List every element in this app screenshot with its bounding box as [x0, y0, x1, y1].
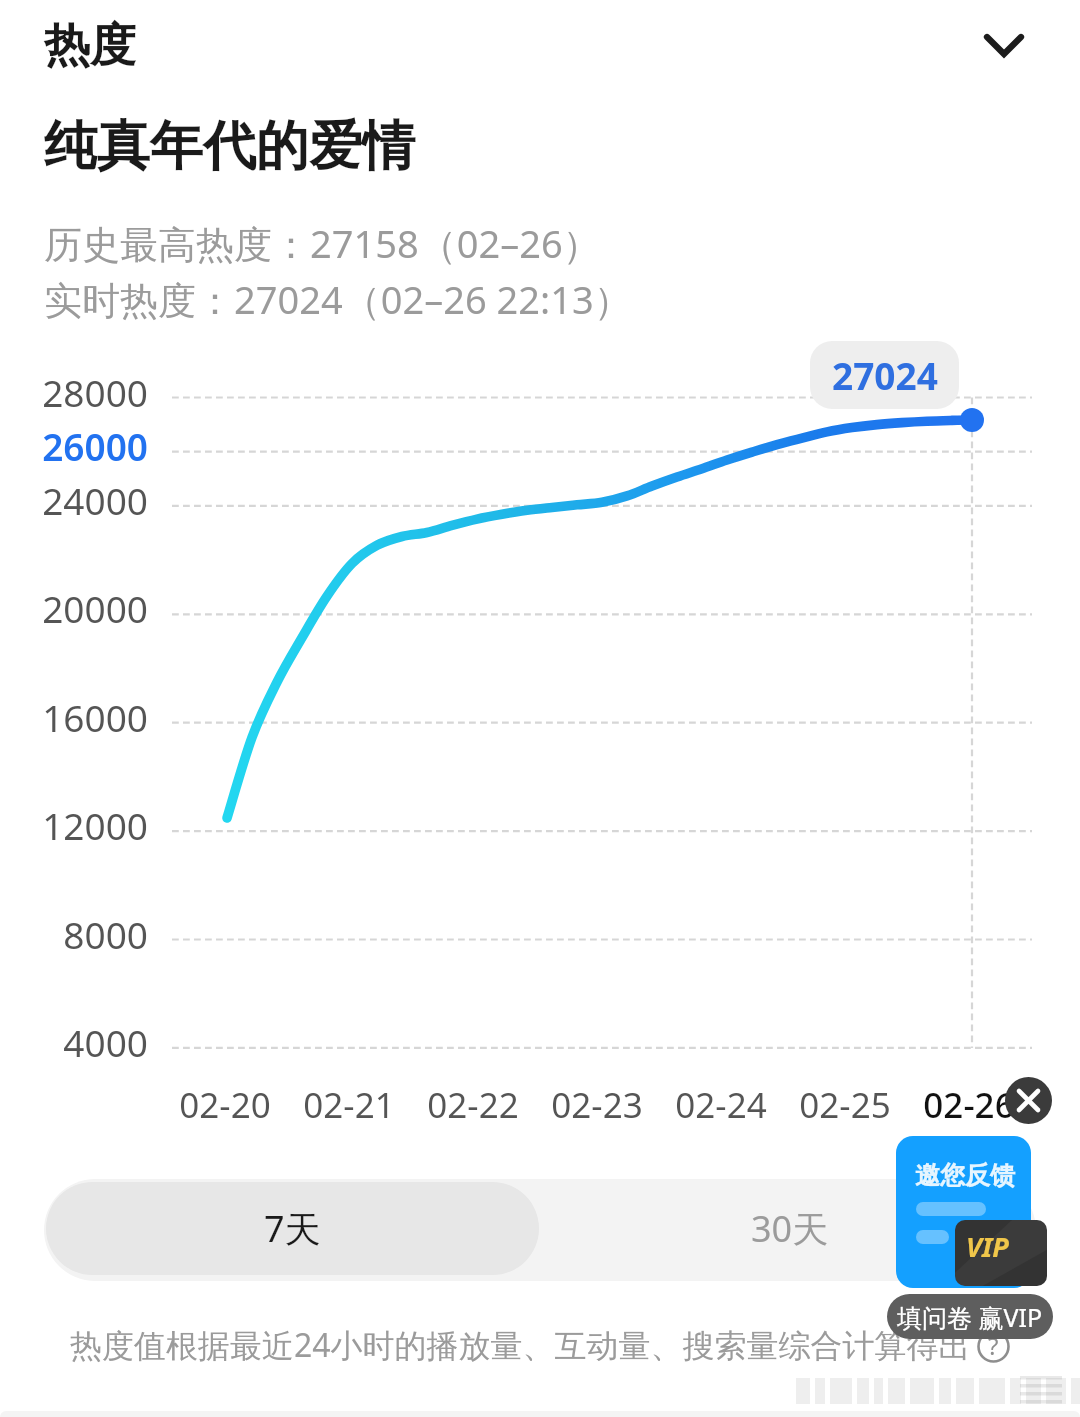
staticText: 热度 [44, 17, 136, 75]
staticText: 7天 [264, 1204, 321, 1253]
staticText: 20000 [28, 583, 148, 633]
button[interactable]: Info [976, 1329, 1011, 1364]
staticText: 邀您反馈 [915, 1160, 1015, 1191]
staticText: 12000 [28, 800, 148, 850]
staticText: 填问卷 赢VIP [897, 1300, 1043, 1334]
button[interactable]: 30天 [543, 1182, 1036, 1275]
staticText: 02-24 [661, 1081, 781, 1129]
button[interactable]: Close [1005, 1077, 1052, 1124]
staticText: ? [988, 1329, 999, 1362]
button[interactable]: Collapse [960, 0, 1046, 86]
staticText: 26000 [28, 421, 148, 471]
staticText: 02-21 [289, 1081, 409, 1129]
button[interactable]: 填问卷 赢VIP [887, 1294, 1053, 1339]
staticText: 02-25 [785, 1081, 905, 1129]
staticText: 8000 [28, 909, 148, 959]
button[interactable]: Feedback promo [896, 1136, 1031, 1288]
staticText: 02-23 [537, 1081, 657, 1129]
staticText: 30天 [751, 1204, 829, 1253]
staticText: 16000 [28, 692, 148, 742]
staticText: 历史最高热度：27158（02–26） [44, 217, 601, 269]
staticText: 02-22 [413, 1081, 533, 1129]
staticText: 24000 [28, 475, 148, 525]
staticText: 27024 [832, 350, 938, 400]
staticText: 实时热度：27024（02–26 22:13） [44, 273, 632, 325]
button[interactable]: 7天 [46, 1182, 539, 1275]
staticText: 纯真年代的爱情 [44, 113, 415, 180]
staticText: VIP [966, 1228, 1009, 1265]
staticText: 02-20 [165, 1081, 285, 1129]
staticText: 热度值根据最近24小时的播放量、互动量、搜索量综合计算得出 [70, 1323, 971, 1367]
staticText: 4000 [28, 1017, 148, 1067]
staticText: 28000 [28, 367, 148, 417]
staticText: 02-26 [909, 1081, 1029, 1129]
